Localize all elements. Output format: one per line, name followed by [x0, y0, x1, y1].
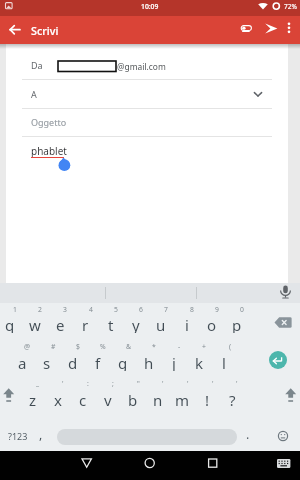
button[interactable] — [274, 453, 296, 475]
button[interactable] — [225, 303, 250, 340]
staticText: + — [202, 342, 206, 351]
button[interactable] — [261, 19, 281, 39]
button[interactable] — [136, 340, 161, 377]
staticText: A — [31, 88, 37, 100]
button[interactable] — [135, 451, 165, 477]
staticText: 8 — [190, 305, 194, 314]
staticText: p — [232, 315, 242, 333]
button[interactable] — [170, 377, 195, 414]
staticText: ' — [187, 379, 189, 388]
staticText: ; — [112, 379, 114, 388]
staticText: Da — [31, 59, 43, 71]
staticText: @ — [24, 342, 31, 351]
button[interactable] — [32, 418, 52, 448]
staticText: v — [104, 390, 112, 408]
button[interactable] — [124, 303, 149, 340]
button[interactable] — [6, 137, 288, 283]
button[interactable] — [48, 303, 73, 340]
button[interactable] — [10, 340, 35, 377]
button[interactable] — [187, 340, 212, 377]
staticText: @gmail.com — [117, 61, 166, 72]
button[interactable] — [174, 303, 199, 340]
button[interactable] — [4, 20, 24, 40]
button[interactable] — [3, 418, 33, 448]
staticText: g — [118, 353, 128, 371]
staticText: 10:09 — [141, 2, 159, 11]
button[interactable] — [149, 303, 174, 340]
button[interactable] — [199, 303, 224, 340]
button[interactable] — [1, 380, 17, 412]
staticText: Scrivi — [31, 23, 59, 38]
staticText: w — [29, 315, 41, 333]
staticText: a — [18, 353, 27, 371]
staticText: y — [132, 315, 140, 333]
button[interactable] — [237, 20, 255, 36]
button[interactable] — [98, 303, 123, 340]
staticText: 2 — [38, 305, 42, 314]
button[interactable] — [6, 48, 288, 79]
button[interactable] — [283, 380, 299, 412]
staticText: 6 — [139, 305, 143, 314]
button[interactable] — [6, 109, 288, 136]
button[interactable] — [272, 283, 300, 303]
staticText: ' — [212, 379, 214, 388]
staticText: ' — [62, 379, 64, 388]
staticText: f — [95, 353, 101, 371]
button[interactable] — [85, 340, 110, 377]
button[interactable] — [198, 451, 228, 477]
staticText: $ — [76, 342, 80, 351]
staticText: c — [79, 390, 87, 408]
button[interactable] — [45, 377, 70, 414]
button[interactable] — [266, 305, 300, 339]
staticText: phablet — [31, 144, 67, 158]
staticText: x — [54, 390, 62, 408]
staticText: Oggetto — [31, 116, 67, 128]
button[interactable] — [95, 377, 120, 414]
staticText: r — [82, 315, 89, 333]
button[interactable] — [161, 340, 186, 377]
button[interactable] — [120, 377, 145, 414]
staticText: o — [207, 315, 217, 333]
button[interactable] — [6, 80, 288, 108]
button[interactable] — [195, 377, 220, 414]
button[interactable] — [269, 351, 287, 369]
staticText: 5 — [114, 305, 118, 314]
button[interactable] — [212, 340, 237, 377]
button[interactable] — [145, 377, 170, 414]
button[interactable] — [238, 418, 258, 448]
staticText: j — [172, 353, 176, 371]
staticText: 9 — [215, 305, 219, 314]
staticText: 72% — [284, 2, 297, 11]
staticText: 7 — [164, 305, 168, 314]
staticText: - — [178, 342, 181, 351]
staticText: 0 — [240, 305, 244, 314]
staticText: i — [185, 315, 189, 333]
button[interactable] — [0, 303, 22, 340]
staticText: _ — [36, 379, 40, 388]
staticText: l — [222, 353, 226, 371]
staticText: d — [68, 353, 78, 371]
button[interactable] — [60, 340, 85, 377]
staticText: " — [137, 379, 140, 388]
staticText: q — [5, 315, 15, 333]
staticText: ?123 — [8, 430, 28, 442]
button[interactable] — [35, 340, 60, 377]
button[interactable] — [70, 377, 95, 414]
staticText: & — [126, 342, 131, 351]
button[interactable] — [73, 303, 98, 340]
button[interactable] — [220, 377, 245, 414]
staticText: e — [56, 315, 65, 333]
button[interactable] — [272, 422, 296, 448]
staticText: , — [39, 426, 43, 443]
button[interactable] — [21, 377, 46, 414]
staticText: * — [152, 342, 156, 351]
staticText: ( — [229, 342, 232, 351]
button[interactable] — [22, 303, 47, 340]
staticText: : — [87, 379, 89, 388]
staticText: t — [108, 315, 114, 333]
button[interactable] — [111, 340, 136, 377]
button[interactable] — [72, 451, 102, 477]
staticText: 3 — [63, 305, 67, 314]
button[interactable] — [281, 19, 297, 39]
